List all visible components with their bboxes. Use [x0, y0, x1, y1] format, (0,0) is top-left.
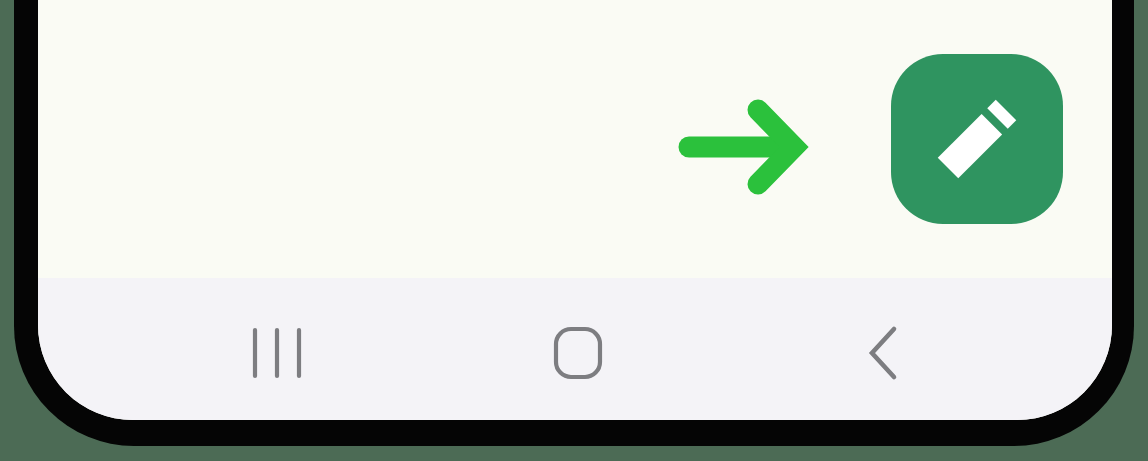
button[interactable]: Home	[518, 293, 638, 413]
button[interactable]: Next	[678, 101, 808, 193]
button[interactable]: Compose	[891, 54, 1063, 224]
button[interactable]: Recent apps	[217, 293, 337, 413]
button[interactable]: Back	[823, 293, 943, 413]
